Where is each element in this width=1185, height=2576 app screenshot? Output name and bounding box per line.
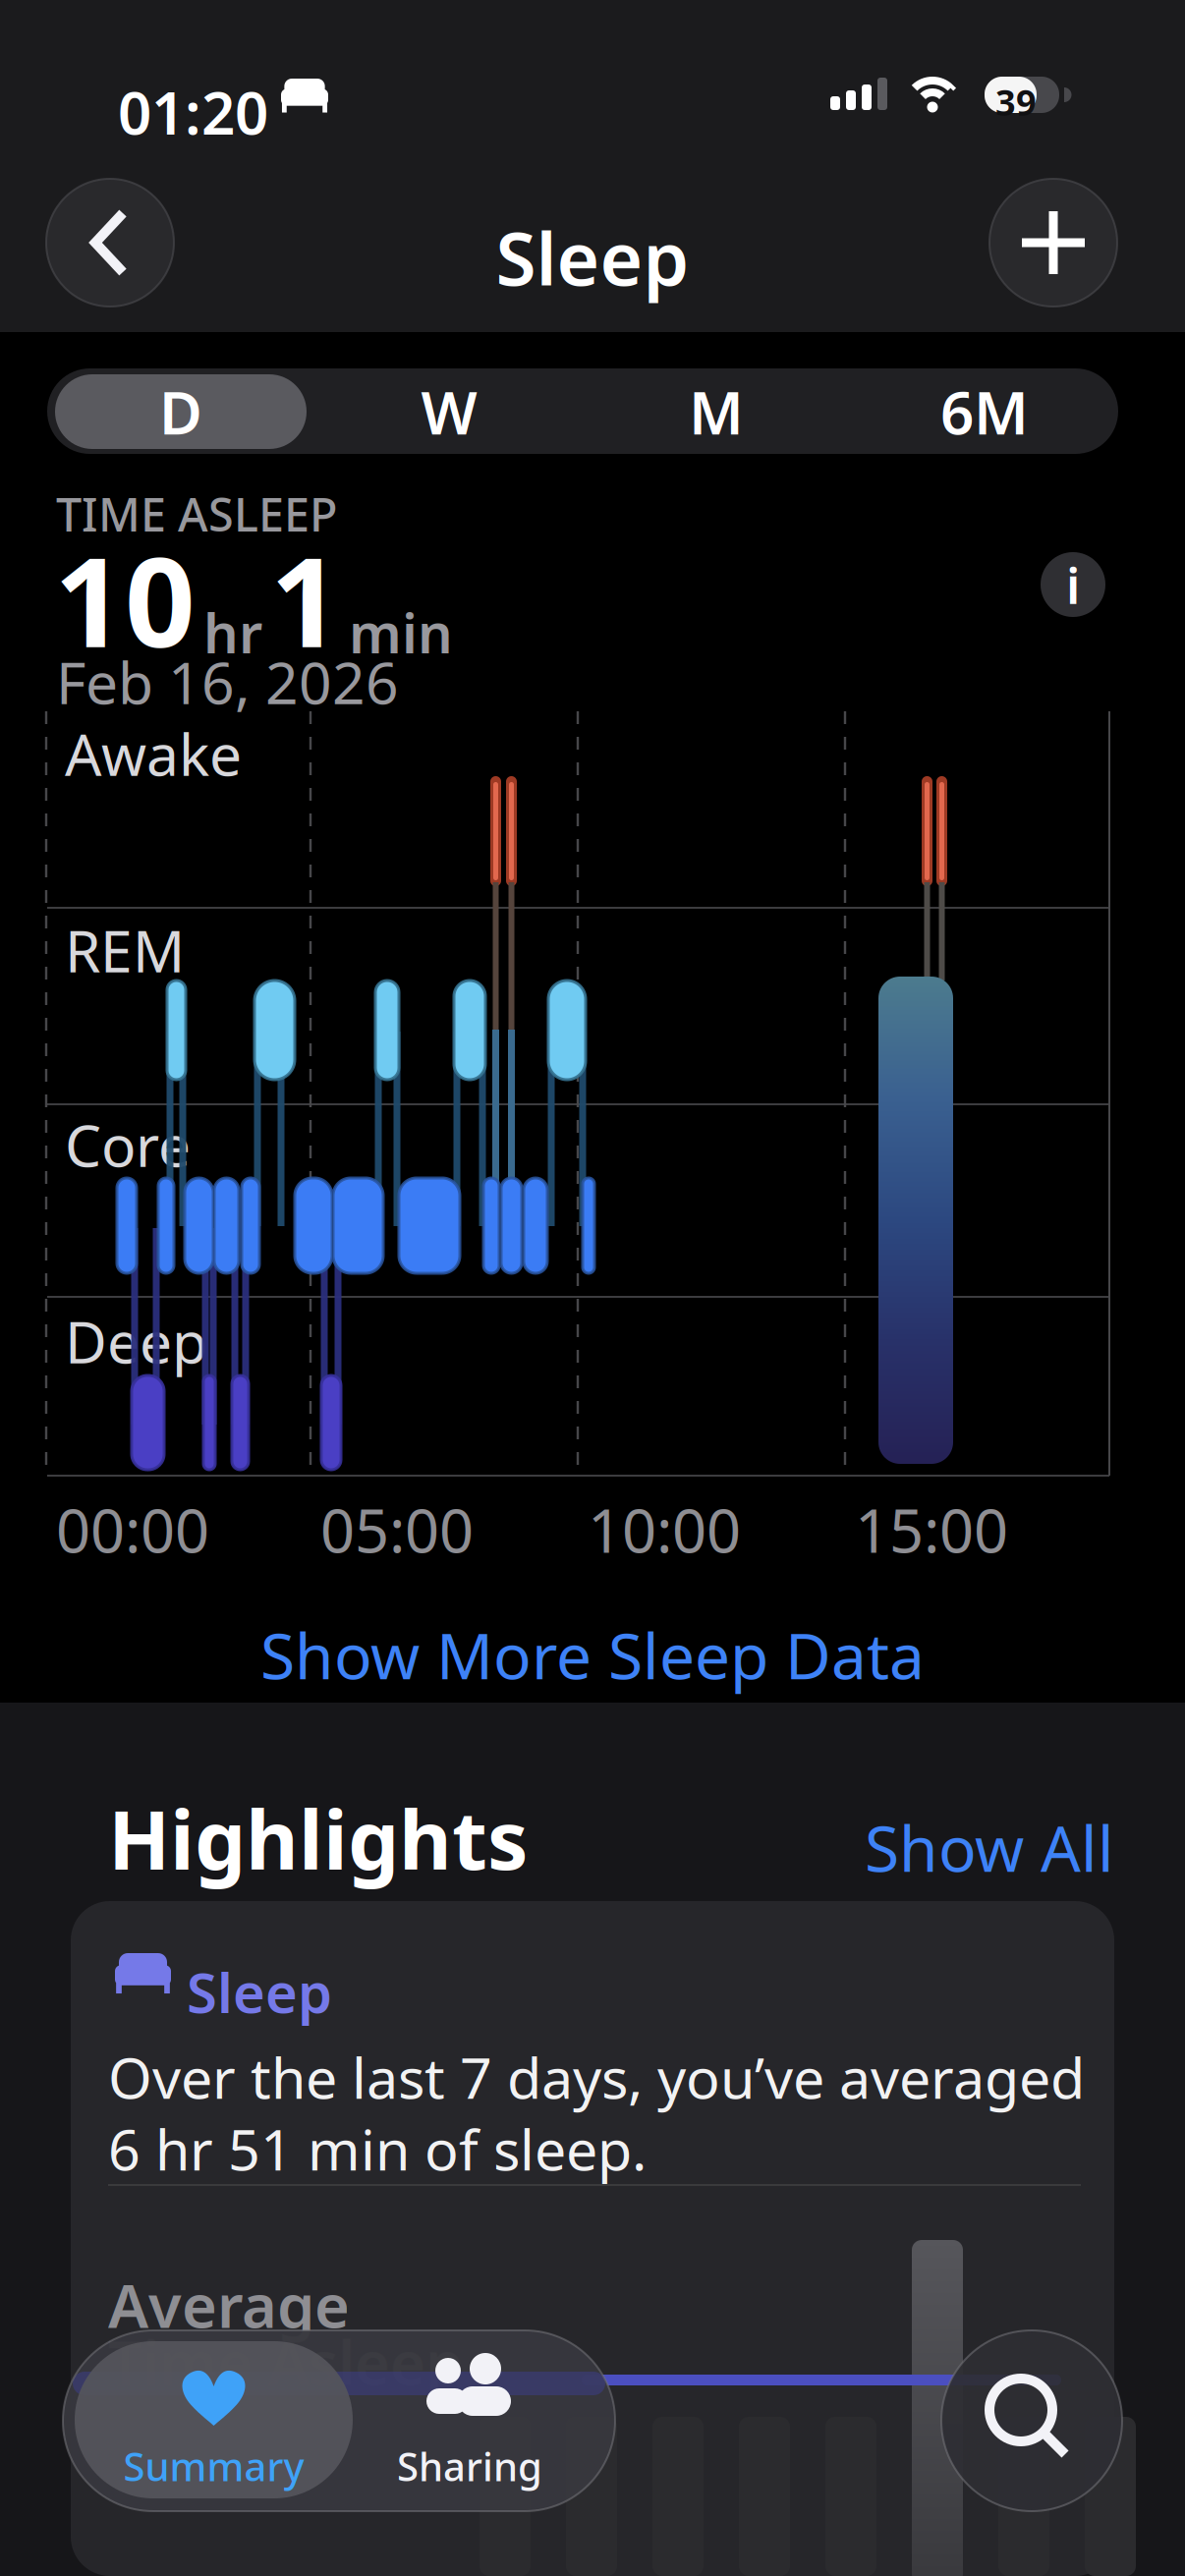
staticText: M	[689, 373, 744, 451]
button[interactable]: Show All	[865, 1806, 1114, 1889]
button[interactable]	[46, 179, 174, 307]
staticText: W	[421, 373, 477, 451]
staticText: hr	[203, 595, 262, 669]
button[interactable]: Show More Sleep Data	[0, 1613, 1185, 1697]
button[interactable]: i	[1041, 552, 1105, 617]
staticText: 01:20	[118, 73, 268, 151]
staticText: Average	[108, 2265, 350, 2345]
button[interactable]: D	[55, 374, 307, 449]
staticText: Time Asleep	[108, 2322, 463, 2402]
button[interactable]	[941, 2330, 1122, 2511]
staticText: 05:00	[320, 1489, 474, 1569]
staticText: Summary	[123, 2440, 304, 2492]
button[interactable]: M	[657, 372, 775, 451]
button[interactable]: Sharing	[352, 2341, 588, 2498]
staticText: 6 hr 51 min of sleep.	[108, 2111, 647, 2186]
staticText: Awake	[65, 715, 242, 792]
staticText: Sharing	[397, 2440, 542, 2492]
staticText: Show All	[865, 1806, 1114, 1889]
staticText: 10:00	[588, 1489, 741, 1569]
staticText: Show More Sleep Data	[260, 1613, 925, 1697]
button[interactable]	[989, 179, 1117, 307]
staticText: 1	[270, 518, 341, 681]
staticText: Core	[65, 1106, 191, 1183]
staticText: 6M	[940, 373, 1029, 451]
staticText: D	[159, 373, 202, 451]
staticText: Over the last 7 days, you’ve averaged	[108, 2040, 1085, 2114]
staticText: 15:00	[855, 1489, 1008, 1569]
button[interactable]: 6M	[916, 372, 1053, 451]
button[interactable]: W	[390, 372, 508, 451]
button[interactable]: Sleep	[71, 1901, 1114, 2576]
staticText: 00:00	[56, 1489, 209, 1569]
staticText: Sleep	[187, 1955, 332, 2028]
staticText: min	[349, 595, 453, 669]
button[interactable]: Summary	[75, 2341, 353, 2498]
staticText: i	[1066, 552, 1080, 618]
staticText: Highlights	[108, 1784, 528, 1892]
staticText: 39	[995, 79, 1037, 126]
staticText: Feb 16, 2026	[56, 644, 399, 720]
staticText: 10	[54, 518, 196, 681]
staticText: Deep	[65, 1303, 207, 1379]
staticText: TIME ASLEEP	[56, 483, 337, 544]
staticText: Sleep	[496, 208, 689, 306]
staticText: REM	[65, 912, 185, 988]
